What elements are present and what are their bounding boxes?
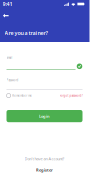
staticText: Email <box>6 56 12 59</box>
button[interactable]: Register <box>36 167 53 173</box>
staticText: Register <box>36 167 53 173</box>
staticText: Forgot password? <box>59 94 82 97</box>
button[interactable]: Back <box>0 12 14 20</box>
staticText: Login <box>39 113 50 119</box>
button[interactable]: Login <box>6 110 82 122</box>
staticText: Password <box>6 78 18 82</box>
staticText: Don't have an Account? <box>24 156 64 161</box>
button[interactable]: Forgot password? <box>59 94 82 97</box>
staticText: Remember me <box>12 94 32 97</box>
staticText: 9:41 <box>2 0 12 8</box>
button[interactable]: Remember me <box>6 93 32 98</box>
staticText: Are you a trainer? <box>4 29 47 36</box>
